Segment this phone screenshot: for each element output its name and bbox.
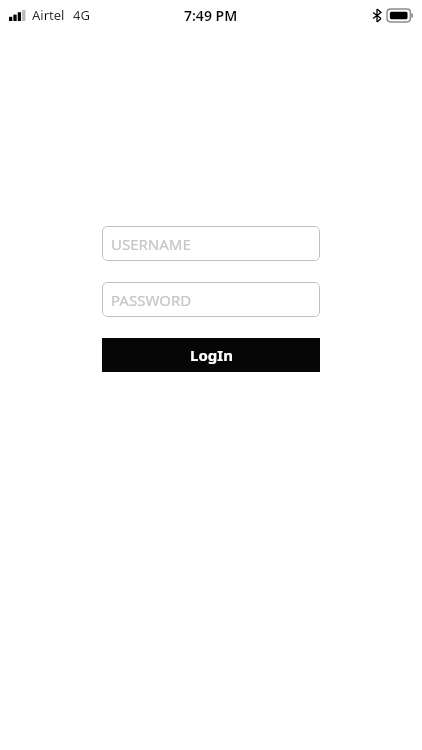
staticText: 7:49 PM — [184, 6, 238, 25]
button[interactable]: USERNAME — [102, 226, 320, 261]
staticText: USERNAME — [111, 234, 191, 254]
button[interactable]: PASSWORD — [102, 282, 320, 317]
button[interactable]: LogIn — [102, 338, 320, 372]
other: Battery full — [387, 9, 413, 22]
staticText: 4G — [73, 6, 90, 24]
staticText: LogIn — [190, 345, 233, 365]
staticText: Airtel — [32, 6, 65, 24]
other: Bluetooth — [373, 9, 381, 22]
staticText: PASSWORD — [111, 290, 192, 310]
